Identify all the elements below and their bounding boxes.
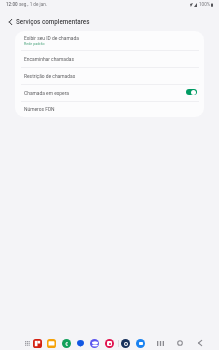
button[interactable] bbox=[90, 339, 99, 348]
staticText: Restrição de chamadas bbox=[24, 73, 76, 79]
staticText: Números FDN bbox=[24, 106, 55, 112]
button[interactable] bbox=[121, 339, 130, 348]
button[interactable] bbox=[105, 339, 114, 348]
button[interactable] bbox=[62, 339, 71, 348]
button[interactable]: Chamada em espera bbox=[15, 85, 204, 102]
button[interactable]: Aplicativos recentes bbox=[154, 337, 166, 349]
staticText: Serviços complementares bbox=[16, 18, 90, 25]
staticText: Exibir seu ID de chamada bbox=[24, 35, 79, 41]
button[interactable] bbox=[47, 339, 56, 348]
button[interactable]: Início bbox=[174, 337, 186, 349]
staticText: seg., 1 de jan. bbox=[19, 2, 47, 7]
button[interactable]: Todos os apps bbox=[21, 337, 33, 349]
button[interactable]: Números FDN bbox=[15, 102, 204, 117]
button[interactable]: Voltar bbox=[194, 337, 206, 349]
button[interactable]: Encaminhar chamadas bbox=[15, 51, 204, 68]
button[interactable] bbox=[33, 339, 42, 348]
staticText: 12:00 bbox=[6, 2, 18, 7]
button[interactable] bbox=[136, 339, 145, 348]
button[interactable]: Restrição de chamadas bbox=[15, 68, 204, 85]
staticText: Encaminhar chamadas bbox=[24, 56, 74, 62]
staticText: Rede padrão bbox=[24, 42, 45, 46]
staticText: 100% bbox=[199, 2, 211, 7]
button[interactable] bbox=[76, 339, 85, 348]
button[interactable]: Exibir seu ID de chamada bbox=[15, 31, 204, 51]
button[interactable]: Navegar para cima bbox=[0, 16, 16, 27]
staticText: Chamada em espera bbox=[24, 90, 69, 96]
